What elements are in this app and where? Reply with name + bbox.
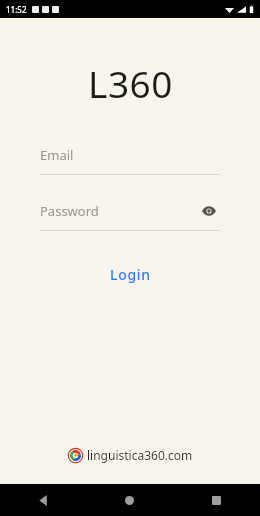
button[interactable]: Show password — [198, 200, 220, 222]
staticText: 11:52 — [6, 4, 27, 15]
staticText: L360 — [88, 58, 173, 108]
button[interactable]: Home — [86, 484, 173, 516]
button[interactable]: Password — [40, 198, 220, 231]
staticText: Login — [110, 265, 151, 284]
button[interactable]: Email — [40, 142, 220, 175]
staticText: Email — [40, 146, 74, 164]
button[interactable]: Back — [0, 484, 86, 516]
staticText: linguistica360.com — [87, 447, 193, 463]
button[interactable]: Recent apps — [173, 484, 260, 516]
staticText: Password — [40, 202, 99, 220]
button[interactable]: Login — [92, 257, 169, 292]
